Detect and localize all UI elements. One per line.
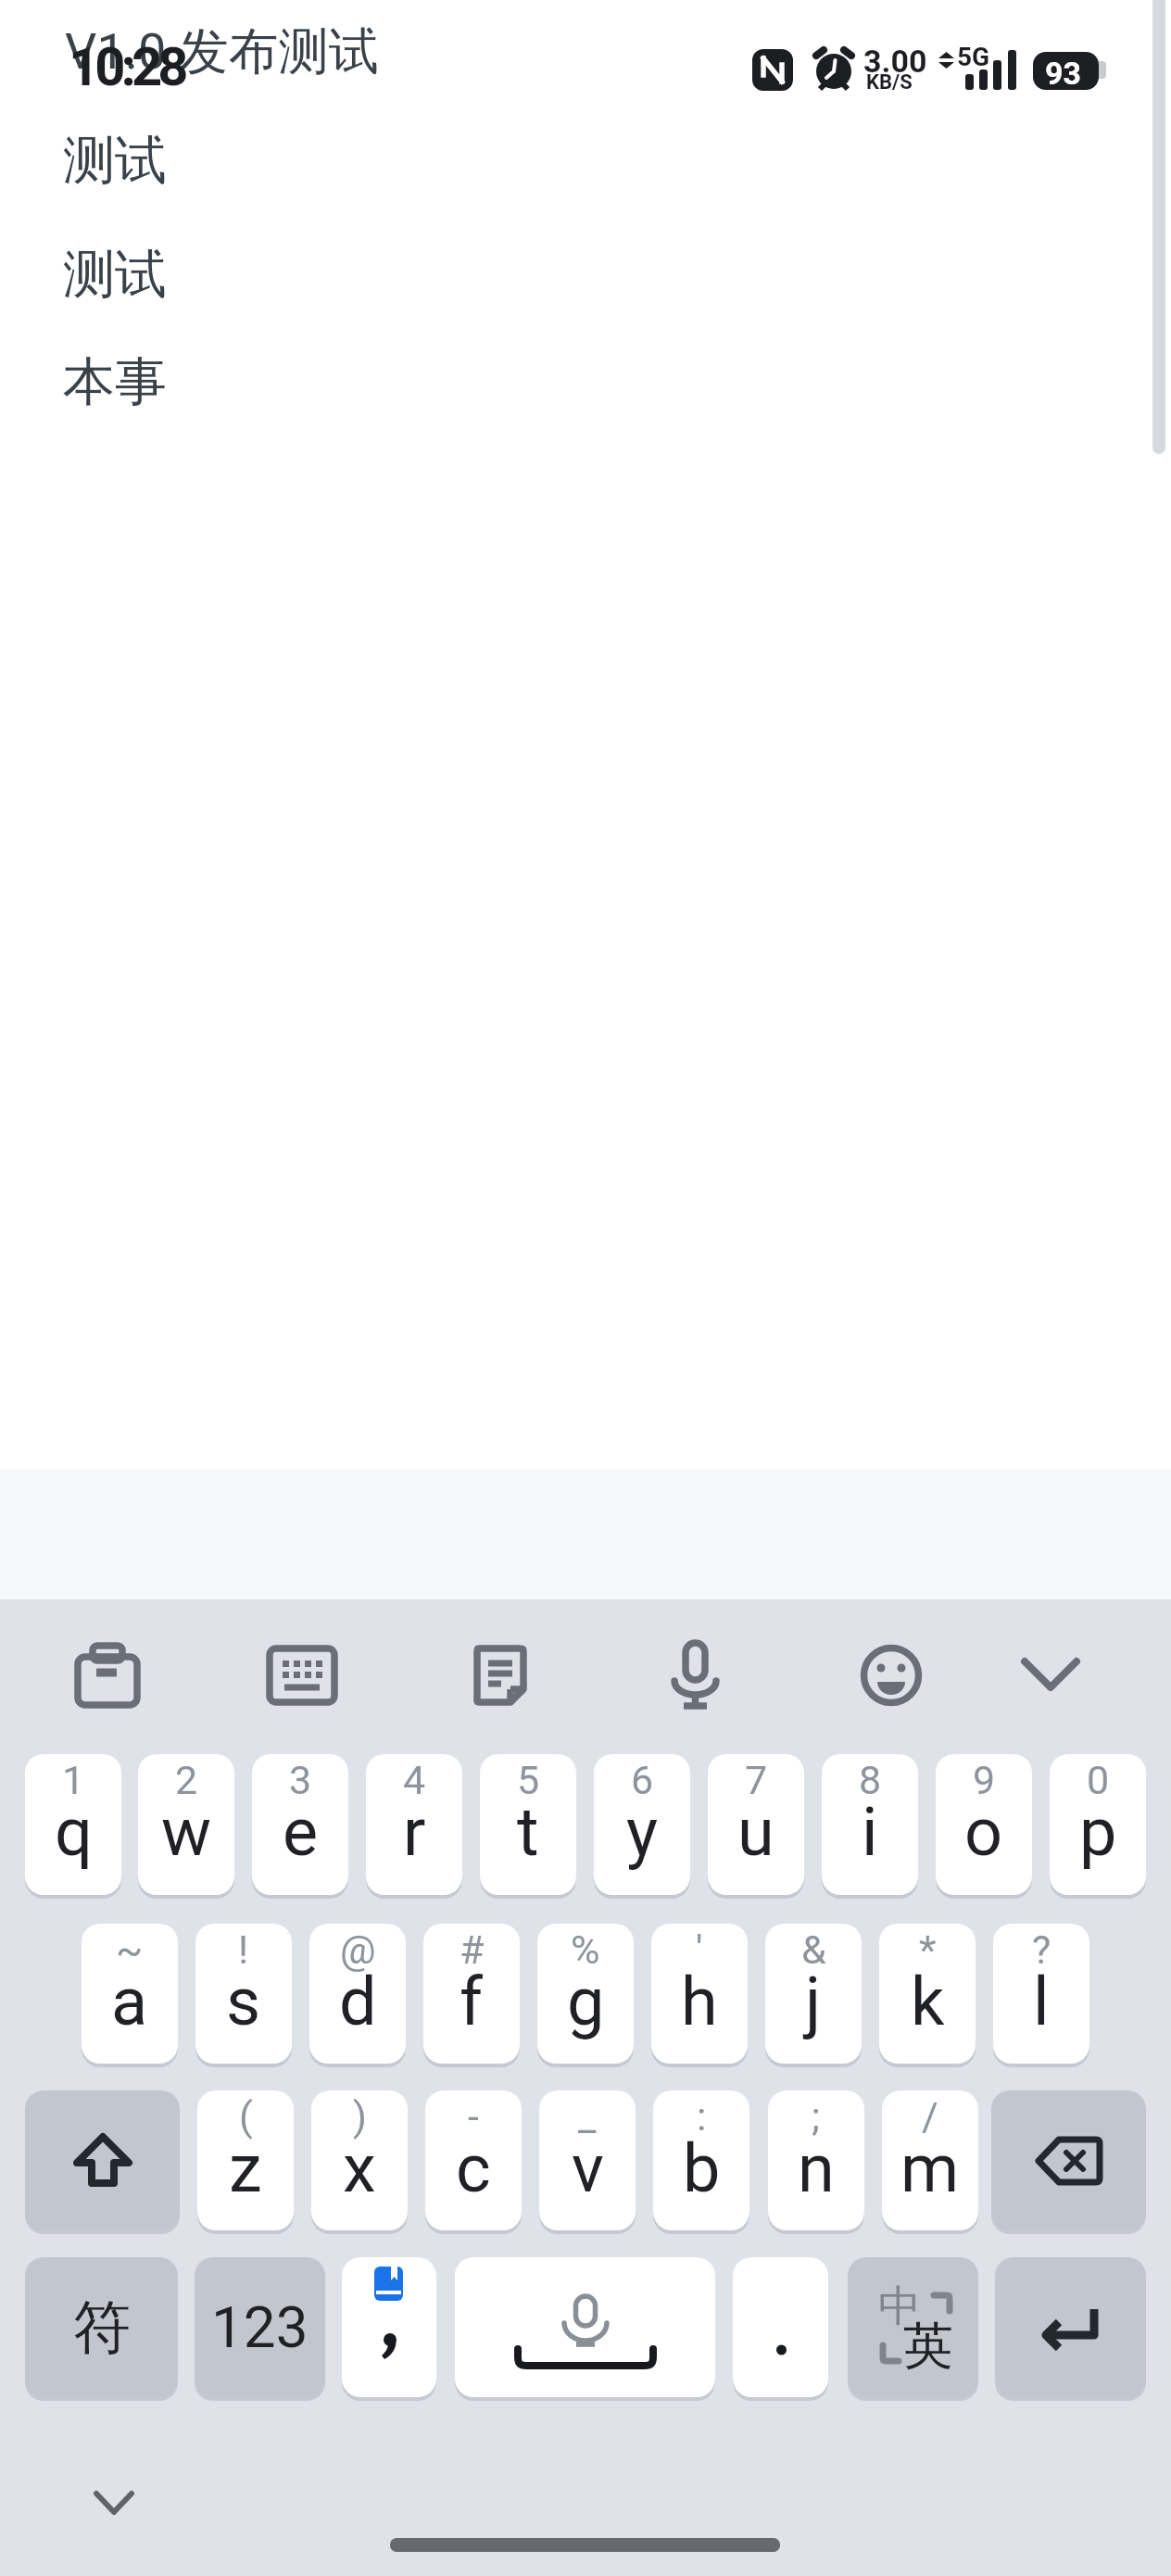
button[interactable]: ~ — [82, 1924, 178, 2064]
button[interactable] — [733, 2257, 828, 2397]
button[interactable]: ! — [195, 1924, 292, 2064]
button[interactable]: 5 — [480, 1754, 576, 1895]
button[interactable]: 3 — [252, 1754, 348, 1895]
staticText: u — [737, 1793, 774, 1871]
button[interactable] — [991, 2090, 1146, 2230]
staticText: 0 — [1087, 1757, 1110, 1803]
staticText: k — [911, 1963, 945, 2040]
staticText: @ — [340, 1926, 376, 1973]
button[interactable]: / — [882, 2090, 978, 2230]
staticText: ) — [353, 2093, 367, 2140]
button[interactable]: ( — [197, 2090, 294, 2230]
staticText: 英 — [903, 2315, 953, 2378]
staticText: b — [683, 2129, 721, 2207]
button[interactable]: 0 — [1050, 1754, 1146, 1895]
staticText: 测试 — [63, 242, 167, 308]
staticText: 4 — [403, 1757, 426, 1803]
staticText: V1.0 发布测试 — [65, 20, 379, 83]
staticText: _ — [578, 2093, 597, 2140]
staticText: KB/S — [866, 70, 913, 95]
staticText: j — [805, 1963, 822, 2040]
button[interactable] — [78, 1644, 137, 1705]
staticText: # — [460, 1926, 485, 1973]
button[interactable] — [995, 2257, 1146, 2397]
staticText: n — [798, 2129, 835, 2207]
staticText: m — [900, 2129, 960, 2207]
staticText: s — [226, 1963, 261, 2040]
button[interactable]: - — [425, 2090, 522, 2230]
staticText: 本事 — [63, 349, 167, 415]
button[interactable] — [342, 2257, 436, 2397]
button[interactable] — [1025, 1661, 1077, 1691]
staticText: r — [403, 1793, 426, 1871]
staticText: / — [922, 2093, 938, 2140]
staticText: 3 — [289, 1757, 312, 1803]
staticText: ; — [812, 2093, 821, 2140]
staticText: 5 — [517, 1757, 540, 1803]
staticText: 6 — [631, 1757, 654, 1803]
staticText: f — [460, 1963, 484, 2040]
staticText: 1 — [62, 1757, 85, 1803]
staticText: v — [572, 2129, 604, 2207]
staticText: 8 — [859, 1757, 882, 1803]
button[interactable]: : — [653, 2090, 749, 2230]
staticText: e — [283, 1793, 319, 1871]
staticText: a — [111, 1963, 148, 2040]
button[interactable]: 2 — [138, 1754, 234, 1895]
button[interactable]: ) — [311, 2090, 408, 2230]
staticText: ' — [696, 1926, 703, 1973]
button[interactable] — [91, 2488, 137, 2519]
staticText: c — [456, 2129, 491, 2207]
staticText: 9 — [973, 1757, 996, 1803]
staticText: ( — [239, 2093, 253, 2140]
button[interactable]: 7 — [708, 1754, 804, 1895]
button[interactable]: ; — [768, 2090, 864, 2230]
staticText: 2 — [175, 1757, 198, 1803]
staticText: y — [626, 1793, 659, 1871]
staticText: 93 — [1045, 55, 1082, 92]
button[interactable] — [270, 1648, 334, 1702]
staticText: t — [517, 1793, 539, 1871]
button[interactable]: 8 — [822, 1754, 918, 1895]
button[interactable]: & — [765, 1924, 862, 2064]
staticText: - — [468, 2093, 479, 2140]
staticText: o — [964, 1793, 1003, 1871]
staticText: 7 — [745, 1757, 768, 1803]
button[interactable]: 9 — [936, 1754, 1032, 1895]
button[interactable]: _ — [539, 2090, 636, 2230]
button[interactable] — [390, 2538, 780, 2552]
button[interactable]: 123 — [195, 2257, 325, 2397]
button[interactable] — [473, 1645, 527, 1706]
staticText: h — [681, 1963, 718, 2040]
staticText: 5G — [957, 42, 990, 72]
staticText: p — [1079, 1793, 1117, 1871]
staticText: ? — [1032, 1926, 1051, 1973]
staticText: w — [161, 1793, 212, 1871]
button[interactable] — [455, 2257, 715, 2397]
staticText: x — [343, 2129, 376, 2207]
button[interactable] — [861, 1645, 922, 1706]
staticText: 10:28 — [69, 35, 184, 98]
staticText: ! — [238, 1926, 249, 1973]
button[interactable]: ' — [651, 1924, 748, 2064]
button[interactable]: 6 — [594, 1754, 690, 1895]
button[interactable] — [674, 1643, 716, 1711]
button[interactable]: * — [879, 1924, 976, 2064]
staticText: 3.00 — [863, 43, 927, 80]
button[interactable]: 1 — [25, 1754, 121, 1895]
staticText: : — [697, 2093, 707, 2140]
button[interactable]: 符 — [25, 2257, 178, 2397]
staticText: 符 — [73, 2292, 131, 2364]
button[interactable]: % — [537, 1924, 634, 2064]
button[interactable]: @ — [309, 1924, 406, 2064]
staticText: d — [339, 1963, 377, 2040]
staticText: g — [567, 1963, 605, 2040]
staticText: & — [801, 1926, 826, 1973]
staticText: 中 — [878, 2279, 921, 2333]
button[interactable]: # — [423, 1924, 520, 2064]
button[interactable]: 中 — [848, 2257, 978, 2397]
button[interactable]: 4 — [366, 1754, 462, 1895]
staticText: l — [1033, 1963, 1050, 2040]
button[interactable] — [25, 2090, 180, 2230]
button[interactable]: ? — [993, 1924, 1089, 2064]
